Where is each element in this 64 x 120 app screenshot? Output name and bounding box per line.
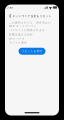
staticText: 影響を受ける項目	[9, 33, 33, 36]
staticText: Wi-Fi / VPN	[9, 37, 24, 40]
staticText: パスワードが削除されます。	[9, 28, 48, 32]
staticText: 9:41	[7, 6, 14, 9]
staticText: ネットワーク設定をリセット	[13, 14, 52, 18]
button[interactable]: Back	[9, 14, 12, 18]
button[interactable]: リセットを実行	[18, 48, 45, 55]
staticText: この操作を行うと、保存済みの Wi-Fi ネットワークと	[9, 21, 51, 28]
staticText: リセットを実行	[21, 50, 42, 53]
staticText: モバイル通信	[9, 41, 27, 44]
